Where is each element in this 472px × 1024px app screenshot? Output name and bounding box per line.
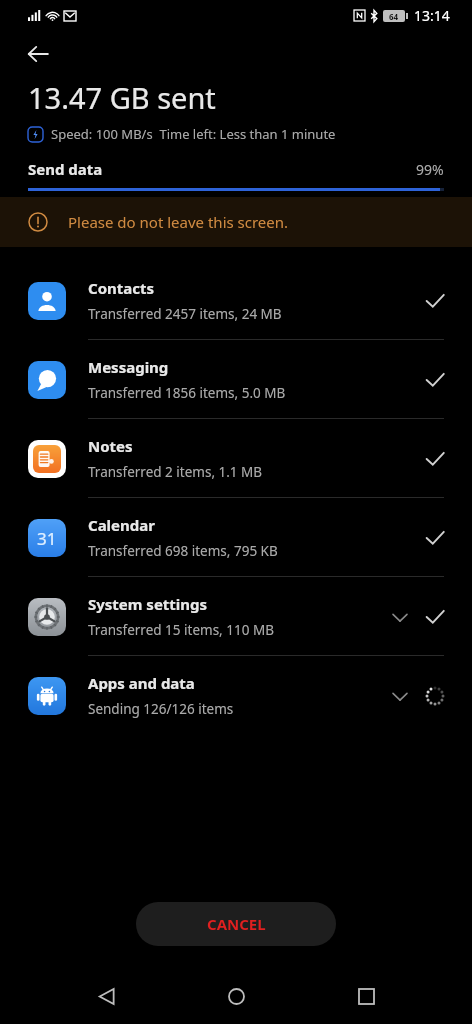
- button[interactable]: Expand: [386, 682, 414, 710]
- button[interactable]: 31: [0, 498, 472, 577]
- button[interactable]: Expand: [386, 603, 414, 631]
- staticText: Transferred 2 items, 1.1 MB: [88, 463, 263, 481]
- staticText: 64: [389, 11, 399, 22]
- staticText: Sending 126/126 items: [88, 700, 234, 718]
- staticText: System settings: [88, 594, 208, 614]
- button[interactable]: Back: [18, 34, 58, 74]
- button[interactable]: Recent apps: [342, 972, 390, 1020]
- staticText: Send data: [28, 159, 103, 179]
- staticText: Transferred 2457 items, 24 MB: [88, 305, 282, 323]
- staticText: 13.47 GB sent: [28, 78, 216, 117]
- button[interactable]: Apps and data: [0, 656, 472, 735]
- staticText: Contacts: [88, 278, 155, 298]
- button[interactable]: Messaging: [0, 340, 472, 419]
- staticText: Transferred 1856 items, 5.0 MB: [88, 384, 286, 402]
- staticText: 13:14: [414, 6, 450, 25]
- staticText: Transferred 15 items, 110 MB: [88, 621, 274, 639]
- staticText: Notes: [88, 436, 133, 456]
- staticText: Messaging: [88, 357, 169, 377]
- button[interactable]: CANCEL: [136, 902, 336, 946]
- button[interactable]: Home: [212, 972, 260, 1020]
- staticText: 99%: [416, 160, 444, 179]
- staticText: Speed: 100 MB/s Time left: Less than 1 m…: [51, 125, 336, 143]
- button[interactable]: Notes: [0, 419, 472, 498]
- staticText: 31: [37, 527, 57, 550]
- staticText: Please do not leave this screen.: [68, 212, 289, 232]
- staticText: Calendar: [88, 515, 155, 535]
- button[interactable]: Back: [82, 972, 130, 1020]
- staticText: Transferred 698 items, 795 KB: [88, 542, 278, 560]
- button[interactable]: Contacts: [0, 261, 472, 340]
- staticText: Apps and data: [88, 673, 195, 693]
- button[interactable]: System settings: [0, 577, 472, 656]
- staticText: CANCEL: [207, 914, 266, 934]
